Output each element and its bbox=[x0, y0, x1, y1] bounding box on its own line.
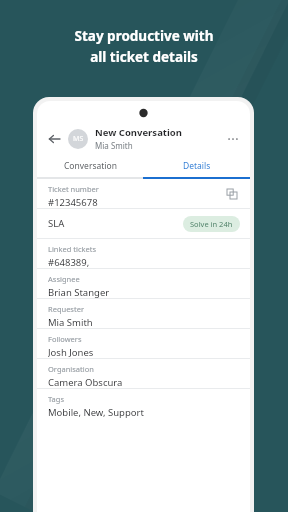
staticText: Assignee bbox=[48, 274, 80, 284]
staticText: Linked tickets bbox=[48, 244, 97, 254]
staticText: Requester bbox=[48, 304, 84, 314]
staticText: Mia Smith bbox=[48, 316, 93, 328]
staticText: Details bbox=[183, 160, 211, 172]
staticText: New Conversation bbox=[95, 126, 182, 139]
staticText: Mia Smith bbox=[95, 140, 133, 151]
button[interactable]: Details bbox=[143, 154, 250, 177]
staticText: #648389, bbox=[48, 256, 90, 268]
button[interactable]: SLA bbox=[37, 209, 250, 238]
button[interactable]: More options bbox=[224, 130, 242, 148]
staticText: Stay productive with bbox=[74, 27, 214, 45]
button[interactable]: Linked tickets bbox=[37, 239, 250, 268]
staticText: Josh Jones bbox=[48, 346, 94, 358]
button[interactable]: Back bbox=[45, 130, 63, 148]
staticText: MS bbox=[73, 134, 84, 144]
button[interactable]: Assignee bbox=[37, 269, 250, 298]
staticText: Solve in 24h bbox=[190, 219, 233, 229]
button[interactable]: Conversation bbox=[37, 154, 143, 177]
button[interactable]: Requester bbox=[37, 299, 250, 328]
staticText: Organisation bbox=[48, 364, 94, 374]
staticText: SLA bbox=[48, 217, 65, 230]
staticText: Camera Obscura bbox=[48, 376, 123, 388]
button[interactable]: Followers bbox=[37, 329, 250, 358]
button[interactable]: Copy ticket number bbox=[224, 186, 240, 202]
staticText: all ticket details bbox=[90, 48, 198, 66]
staticText: Mobile, New, Support bbox=[48, 406, 144, 418]
staticText: Tags bbox=[48, 394, 64, 404]
staticText: Followers bbox=[48, 334, 82, 344]
staticText: Conversation bbox=[64, 160, 117, 172]
button[interactable]: Organisation bbox=[37, 359, 250, 388]
button[interactable]: Tags bbox=[37, 389, 250, 418]
staticText: Ticket number bbox=[48, 184, 99, 194]
staticText: Brian Stanger bbox=[48, 286, 110, 298]
staticText: #12345678 bbox=[48, 196, 98, 208]
